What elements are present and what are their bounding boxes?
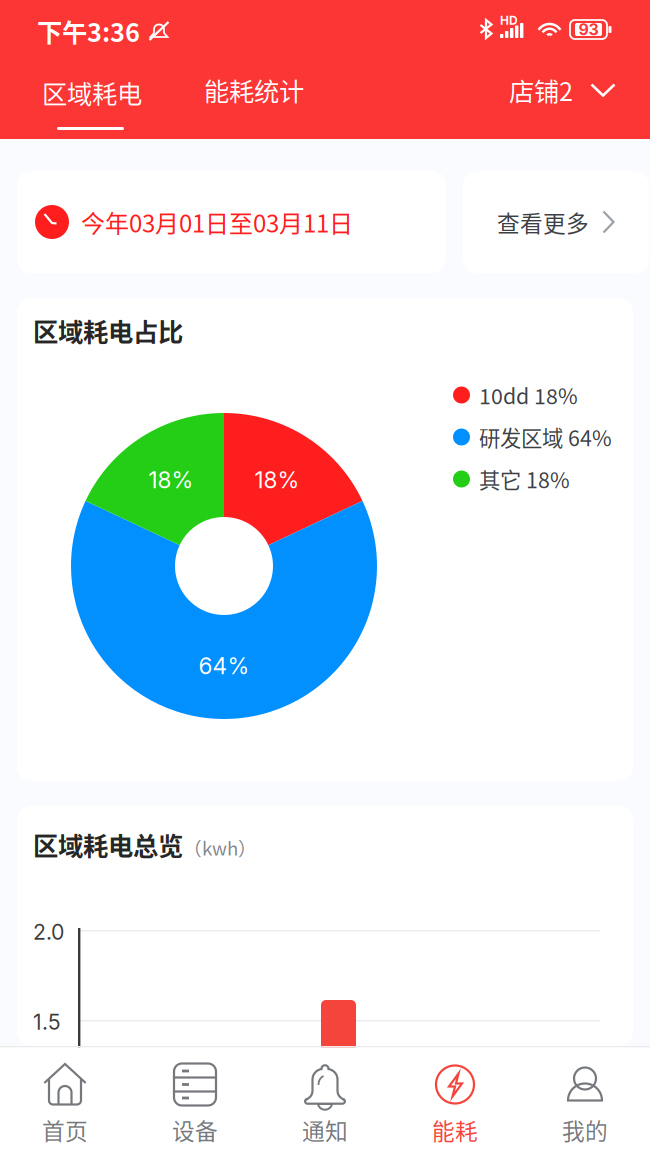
staticText: 通知 [302, 1113, 348, 1146]
staticText: 64% [198, 652, 249, 680]
staticText: 18% [148, 466, 193, 494]
button[interactable]: 查看更多 [463, 171, 649, 273]
staticText: 1.5 [33, 1009, 61, 1035]
staticText: 区域耗电总览 [33, 826, 183, 863]
staticText: 研发区域 64% [479, 422, 612, 452]
staticText: 区域耗电占比 [33, 312, 183, 349]
button[interactable]: 今年03月01日至03月11日 [17, 171, 446, 273]
staticText: 18% [254, 466, 299, 494]
staticText: 查看更多 [497, 206, 589, 238]
staticText: 设备 [172, 1113, 218, 1146]
staticText: HD [500, 13, 518, 27]
button[interactable]: 我的 [520, 1047, 650, 1156]
staticText: 区域耗电 [42, 74, 142, 111]
staticText: 2.0 [33, 919, 64, 945]
staticText: 93 [578, 20, 598, 39]
staticText: 我的 [562, 1113, 608, 1146]
button[interactable]: 设备 [130, 1047, 260, 1156]
button[interactable]: 通知 [260, 1047, 390, 1156]
button[interactable]: 店铺2 [509, 70, 616, 110]
staticText: 首页 [42, 1113, 88, 1146]
staticText: （kwh） [183, 834, 257, 861]
staticText: 店铺2 [509, 72, 573, 108]
staticText: 今年03月01日至03月11日 [81, 205, 353, 239]
staticText: 下午3:36 [37, 13, 140, 49]
staticText: 其它 18% [479, 464, 570, 494]
staticText: 10dd 18% [479, 380, 578, 410]
staticText: 能耗统计 [204, 72, 304, 108]
button[interactable]: 能耗 [390, 1047, 520, 1156]
button[interactable]: 区域耗电 [42, 74, 139, 138]
button[interactable]: 首页 [0, 1047, 130, 1156]
button[interactable]: 能耗统计 [204, 70, 304, 110]
staticText: 能耗 [432, 1113, 478, 1146]
